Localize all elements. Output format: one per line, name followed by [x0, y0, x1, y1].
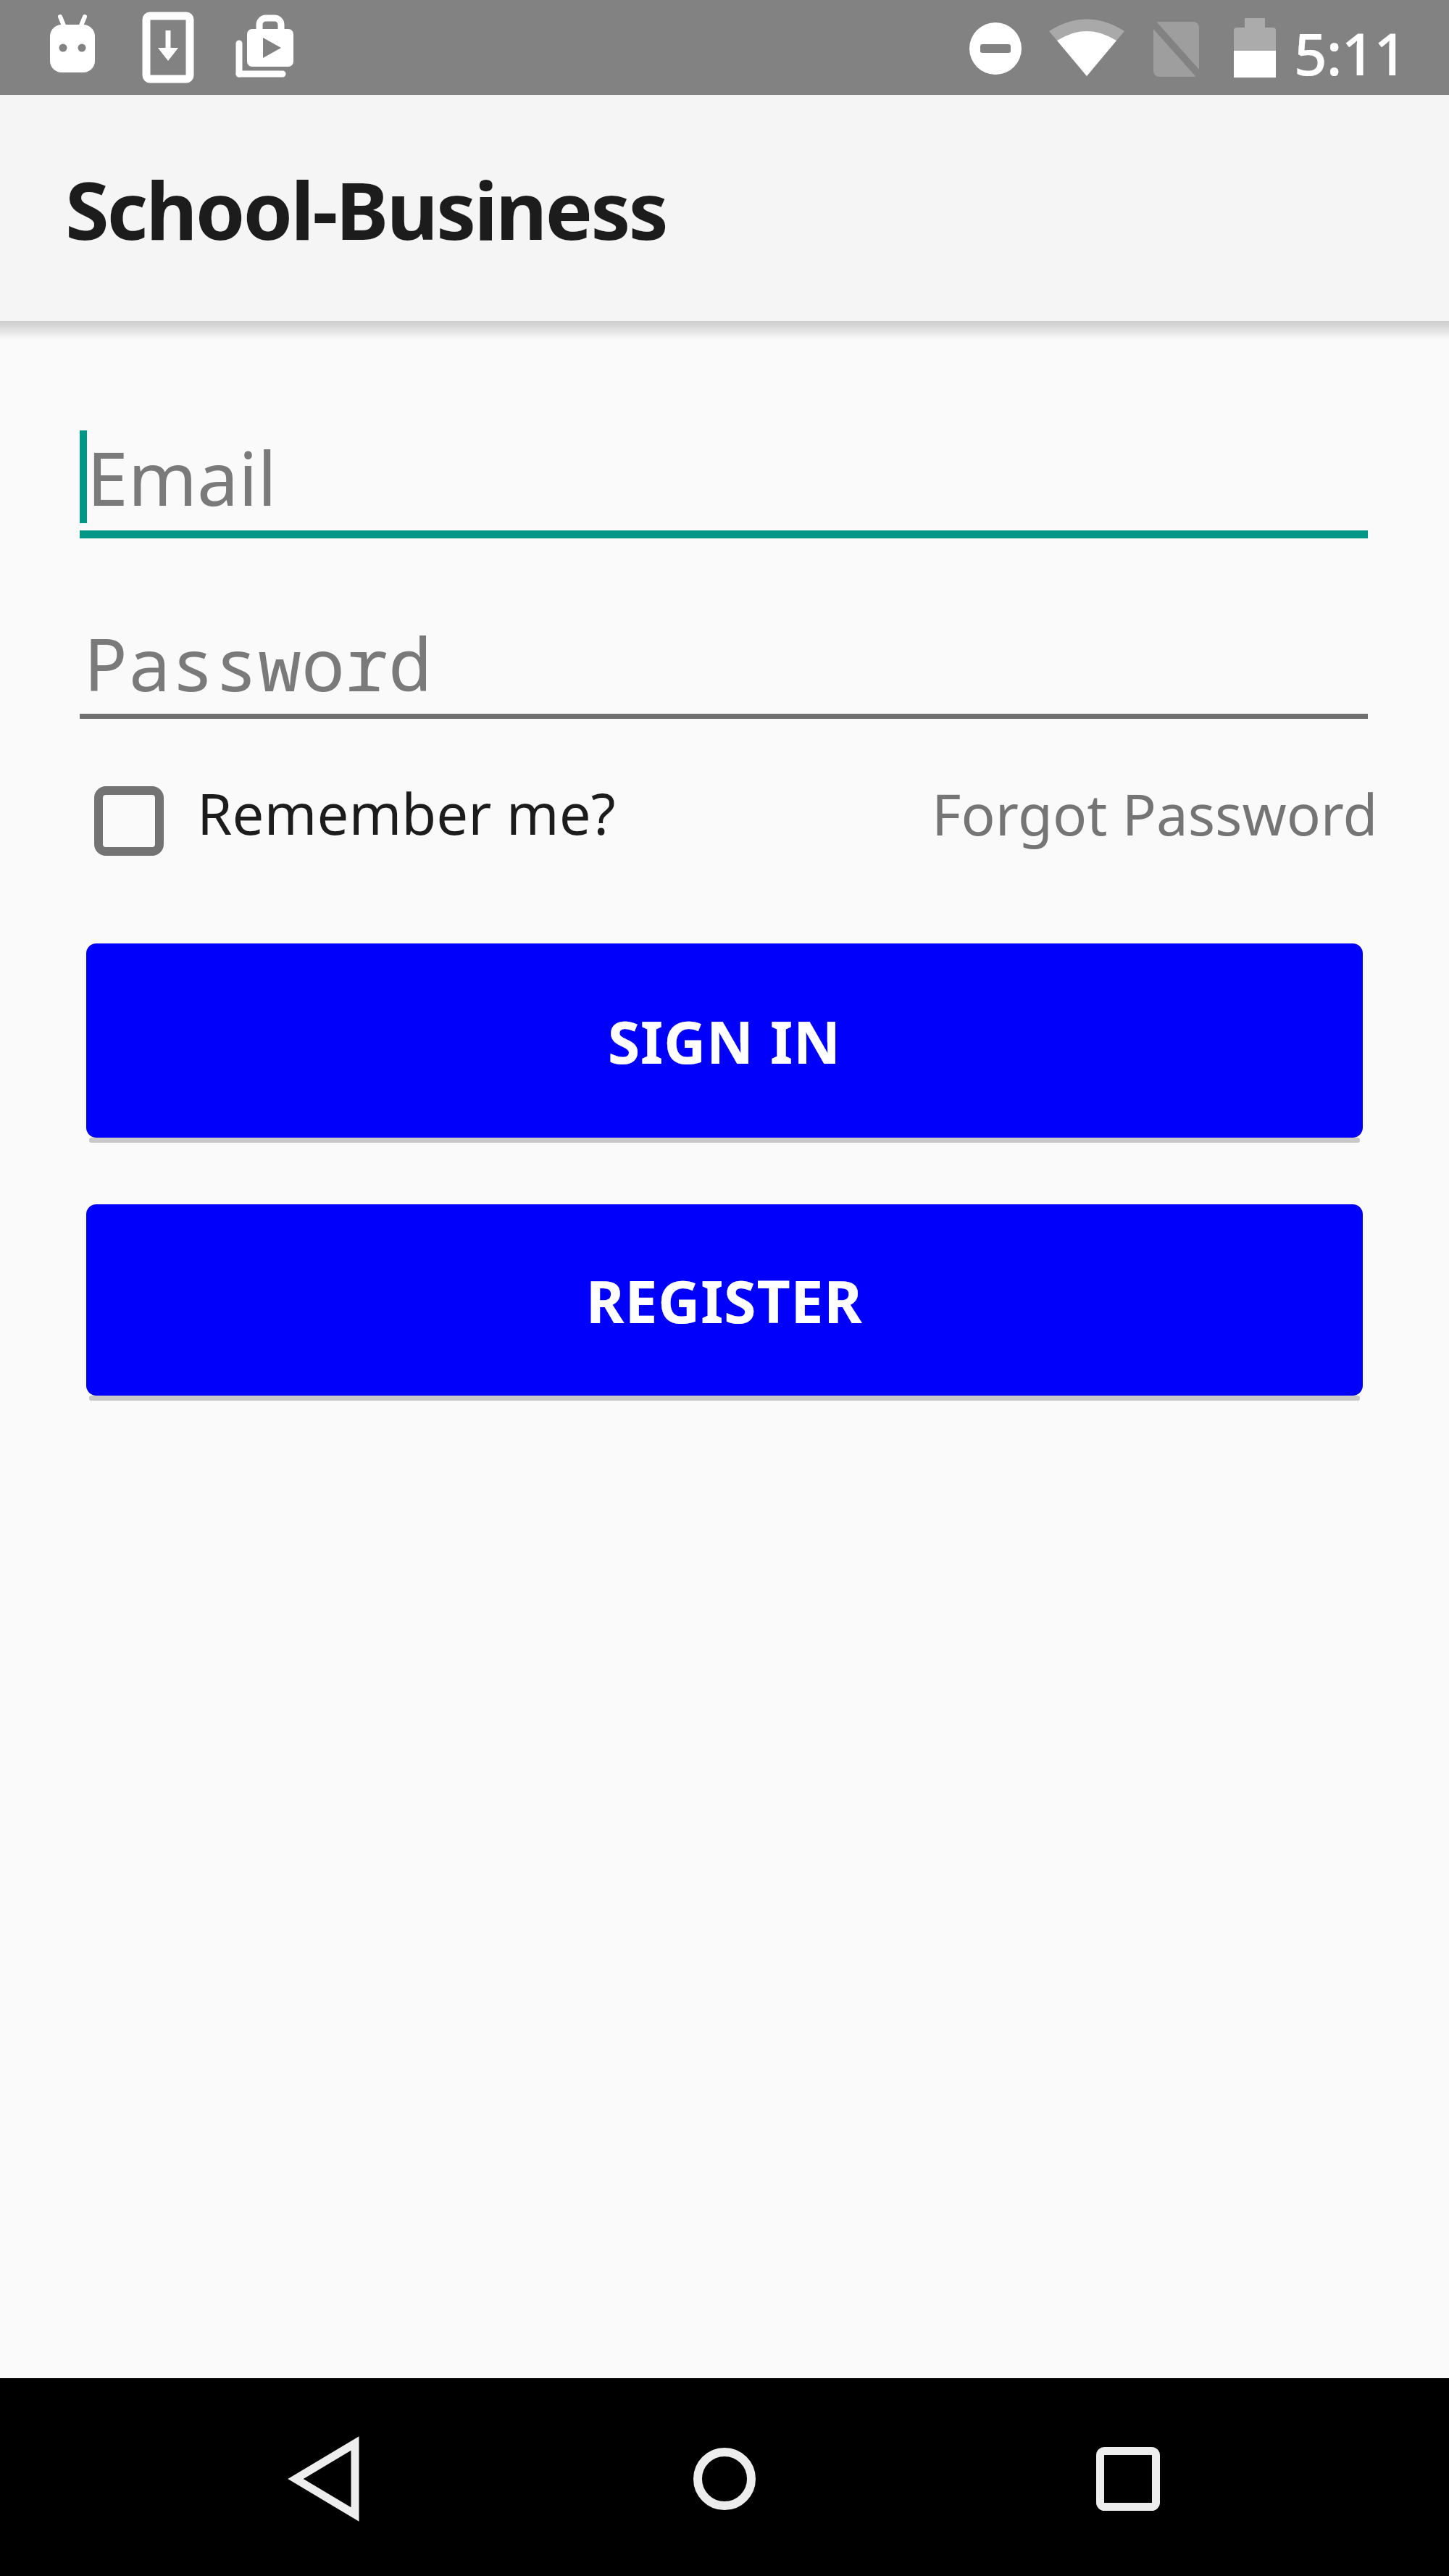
- staticText: Email: [87, 427, 277, 528]
- button[interactable]: [675, 2430, 774, 2528]
- button[interactable]: [80, 594, 1368, 719]
- staticText: REGISTER: [586, 1261, 863, 1340]
- button[interactable]: SIGN IN: [86, 943, 1363, 1138]
- staticText: School-Business: [65, 154, 667, 263]
- button[interactable]: [275, 2412, 374, 2511]
- button[interactable]: [80, 406, 1368, 540]
- staticText: 5:11: [1294, 13, 1407, 92]
- staticText: Password: [84, 614, 432, 712]
- button[interactable]: REGISTER: [86, 1204, 1363, 1396]
- button[interactable]: [1079, 2430, 1177, 2528]
- button[interactable]: [94, 777, 674, 861]
- staticText: SIGN IN: [608, 1001, 842, 1080]
- staticText: Remember me?: [197, 775, 616, 851]
- button[interactable]: Forgot Password: [932, 775, 1378, 852]
